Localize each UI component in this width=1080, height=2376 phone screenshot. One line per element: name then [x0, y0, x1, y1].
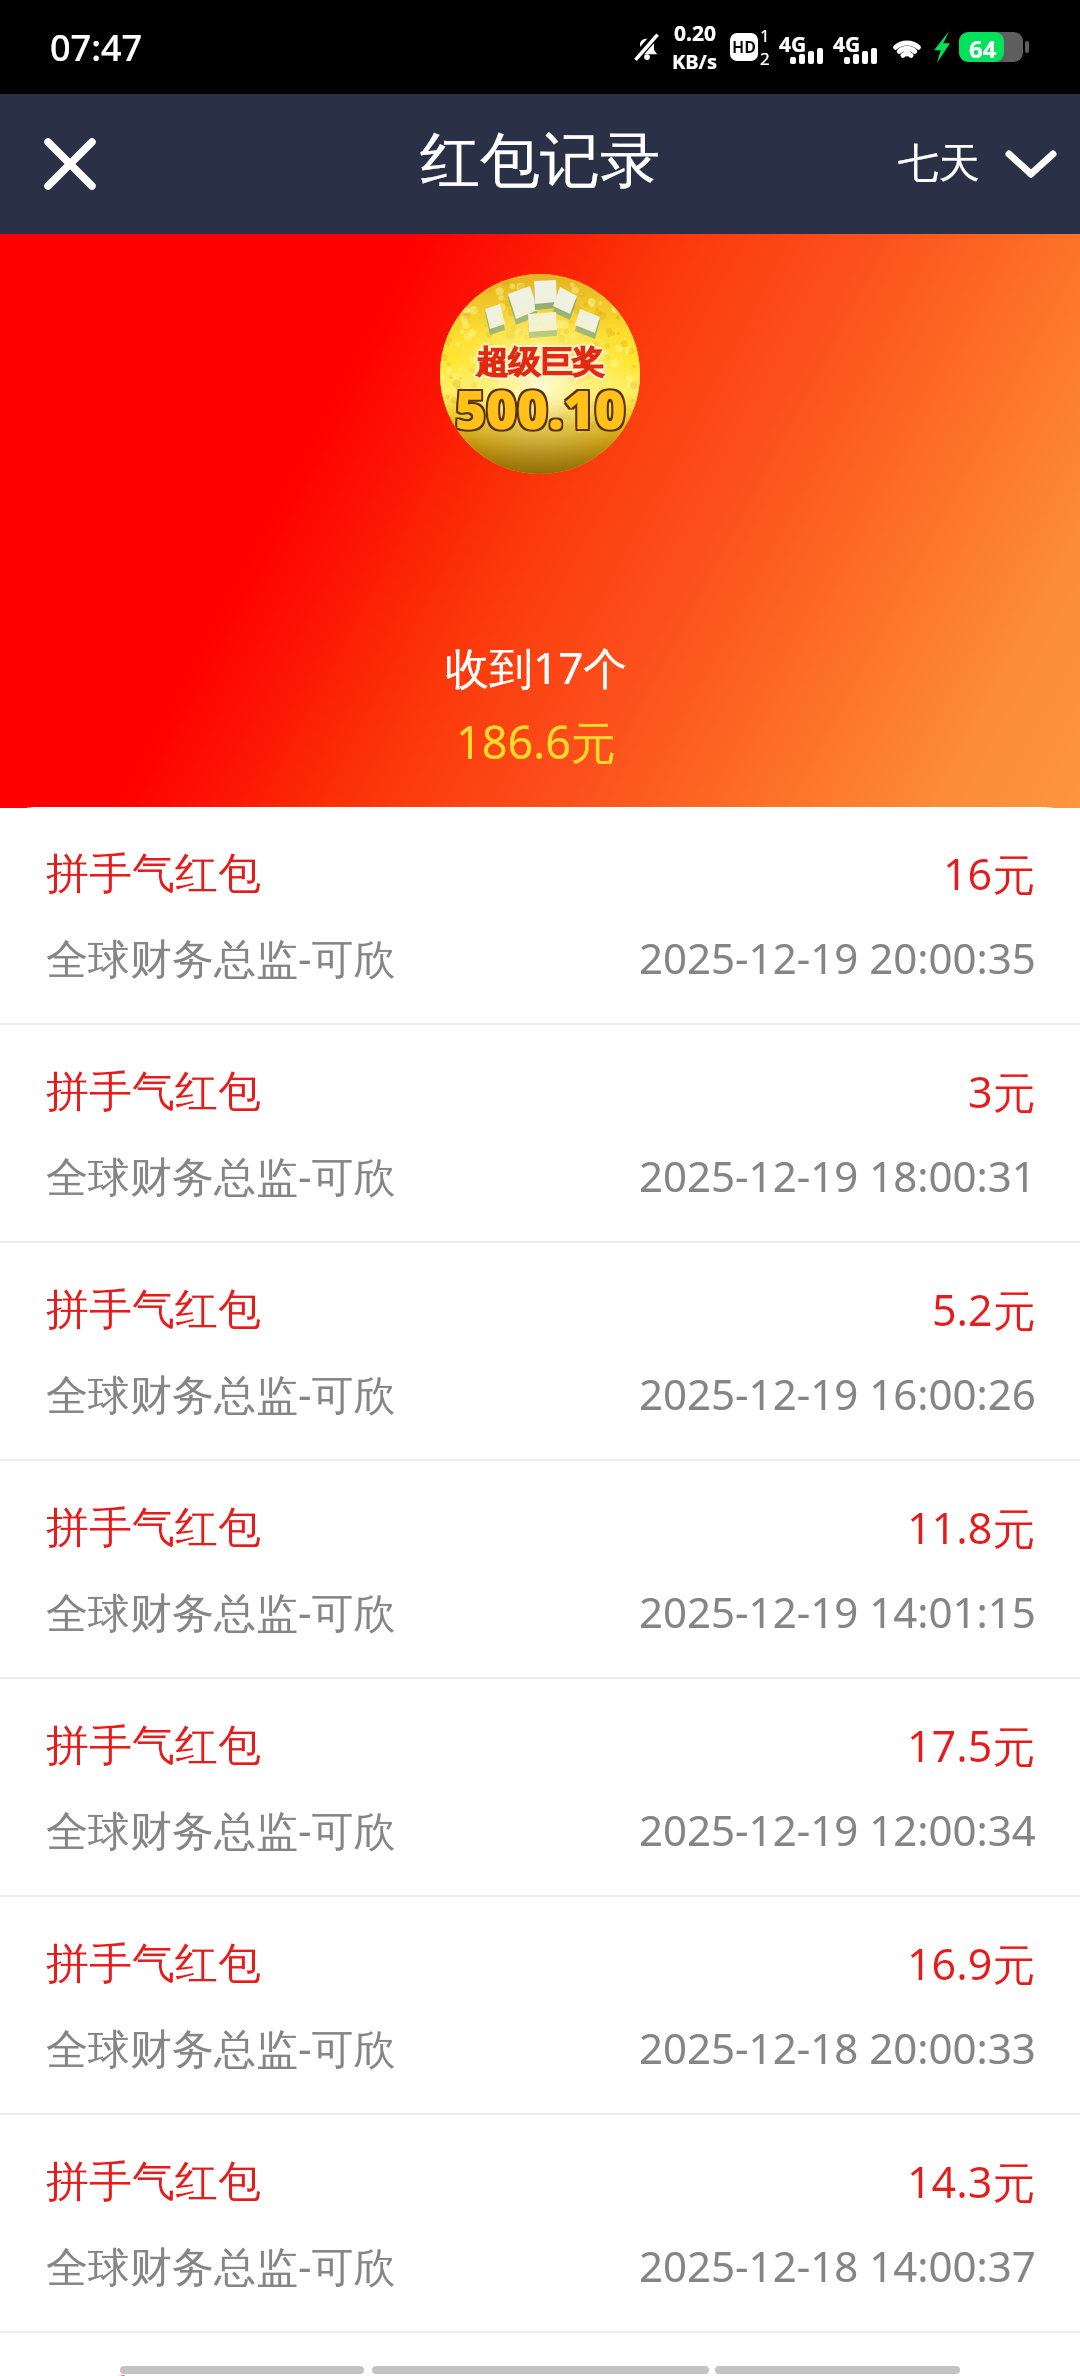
staticText: 500.10 [453, 370, 624, 442]
button[interactable]: 拼手气红包 [0, 1897, 1080, 2113]
staticText: 2025-12-18 20:00:33 [639, 2019, 1036, 2076]
staticText: 2025-12-19 18:00:31 [639, 1147, 1036, 1204]
staticText: 3元 [968, 1062, 1036, 1121]
staticText: KB/s [672, 48, 717, 75]
button[interactable]: 七天 [890, 124, 1064, 204]
staticText: 17.5元 [907, 1716, 1036, 1775]
staticText: 拼手气红包 [46, 1719, 261, 1773]
staticText: 收到17个 [445, 637, 628, 697]
staticText: 500.10 [457, 374, 628, 446]
staticText: 全球财务总监-可欣 [46, 1147, 396, 1204]
staticText: 500.10 [457, 370, 628, 442]
button[interactable]: Back [120, 2366, 364, 2374]
staticText: 64 [969, 32, 997, 62]
staticText: 4G [779, 30, 807, 59]
staticText: 4G [833, 30, 861, 59]
staticText: 11.8元 [907, 1498, 1036, 1557]
staticText: 2025-12-19 14:01:15 [639, 1583, 1036, 1640]
staticText: 拼手气红包 [46, 2370, 261, 2376]
staticText: 0.20 [674, 19, 716, 48]
button[interactable]: 拼手气红包 [0, 1461, 1080, 1677]
staticText: 拼手气红包 [46, 2155, 261, 2209]
staticText: 超级巨奖 [476, 340, 604, 380]
button[interactable]: Recent apps [715, 2366, 960, 2374]
staticText: 2 [760, 47, 770, 70]
staticText: 拼手气红包 [46, 1283, 261, 1337]
staticText: 500.10 [453, 374, 624, 446]
button[interactable]: 拼手气红包 [0, 2333, 1080, 2376]
button[interactable]: 拼手气红包 [0, 1679, 1080, 1895]
staticText: 500.10 [455, 372, 626, 444]
staticText: 500.10 [455, 374, 626, 446]
staticText: 超级巨奖 [478, 342, 606, 382]
staticText: 16元 [943, 844, 1036, 903]
staticText: 全球财务总监-可欣 [46, 2237, 396, 2294]
staticText: 全球财务总监-可欣 [46, 1365, 396, 1422]
staticText: 拼手气红包 [46, 1501, 261, 1555]
staticText: 超级巨奖 [476, 342, 604, 382]
staticText: 1 [760, 24, 770, 47]
staticText: 2025-12-19 12:00:34 [639, 1801, 1036, 1858]
button[interactable]: Home [372, 2366, 709, 2374]
staticText: 12.1元 [907, 2370, 1036, 2376]
staticText: 2025-12-19 16:00:26 [639, 1365, 1036, 1422]
staticText: 红包记录 [420, 123, 660, 199]
staticText: 500.10 [457, 372, 628, 444]
staticText: 全球财务总监-可欣 [46, 929, 396, 986]
button[interactable]: 拼手气红包 [0, 1025, 1080, 1241]
button[interactable]: 拼手气红包 [0, 2115, 1080, 2331]
button[interactable]: 拼手气红包 [0, 807, 1080, 1023]
staticText: 超级巨奖 [476, 344, 604, 384]
staticText: 七天 [898, 138, 980, 190]
staticText: 超级巨奖 [474, 342, 602, 382]
staticText: 14.3元 [907, 2152, 1036, 2211]
staticText: 2025-12-18 14:00:37 [639, 2237, 1036, 2294]
button[interactable]: Close [22, 116, 118, 212]
staticText: 2025-12-19 20:00:35 [639, 929, 1036, 986]
staticText: 5.2元 [932, 1280, 1036, 1339]
staticText: 500.10 [455, 370, 626, 442]
staticText: 07:47 [50, 23, 143, 72]
staticText: 186.6元 [456, 711, 617, 772]
button[interactable]: 拼手气红包 [0, 1243, 1080, 1459]
staticText: 500.10 [453, 372, 624, 444]
staticText: 拼手气红包 [46, 1937, 261, 1991]
staticText: 全球财务总监-可欣 [46, 1583, 396, 1640]
staticText: 16.9元 [907, 1934, 1036, 1993]
staticText: 拼手气红包 [46, 847, 261, 901]
staticText: 全球财务总监-可欣 [46, 2019, 396, 2076]
staticText: HD [732, 36, 756, 58]
staticText: 全球财务总监-可欣 [46, 1801, 396, 1858]
staticText: 拼手气红包 [46, 1065, 261, 1119]
